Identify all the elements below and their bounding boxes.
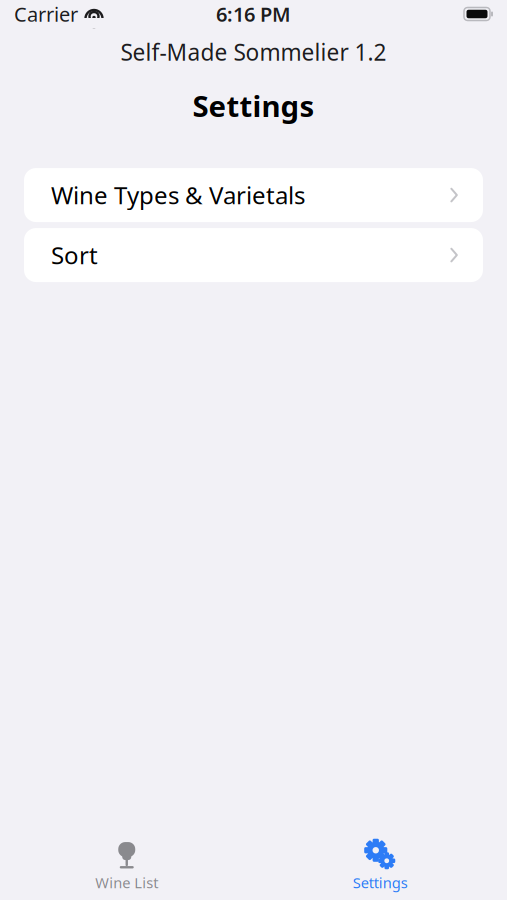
staticText: Sort: [51, 239, 98, 271]
staticText: Wine Types & Varietals: [51, 179, 305, 211]
staticText: Settings: [192, 86, 314, 125]
button[interactable]: Wine List: [0, 836, 253, 896]
staticText: 6:16 PM: [216, 1, 291, 27]
button[interactable]: Settings: [253, 836, 507, 896]
staticText: Carrier: [14, 1, 78, 27]
staticText: Settings: [353, 873, 408, 892]
staticText: Wine List: [95, 873, 158, 892]
staticText: Self-Made Sommelier 1.2: [120, 37, 386, 67]
button[interactable]: Sort: [24, 228, 483, 282]
button[interactable]: Wine Types & Varietals: [24, 168, 483, 222]
